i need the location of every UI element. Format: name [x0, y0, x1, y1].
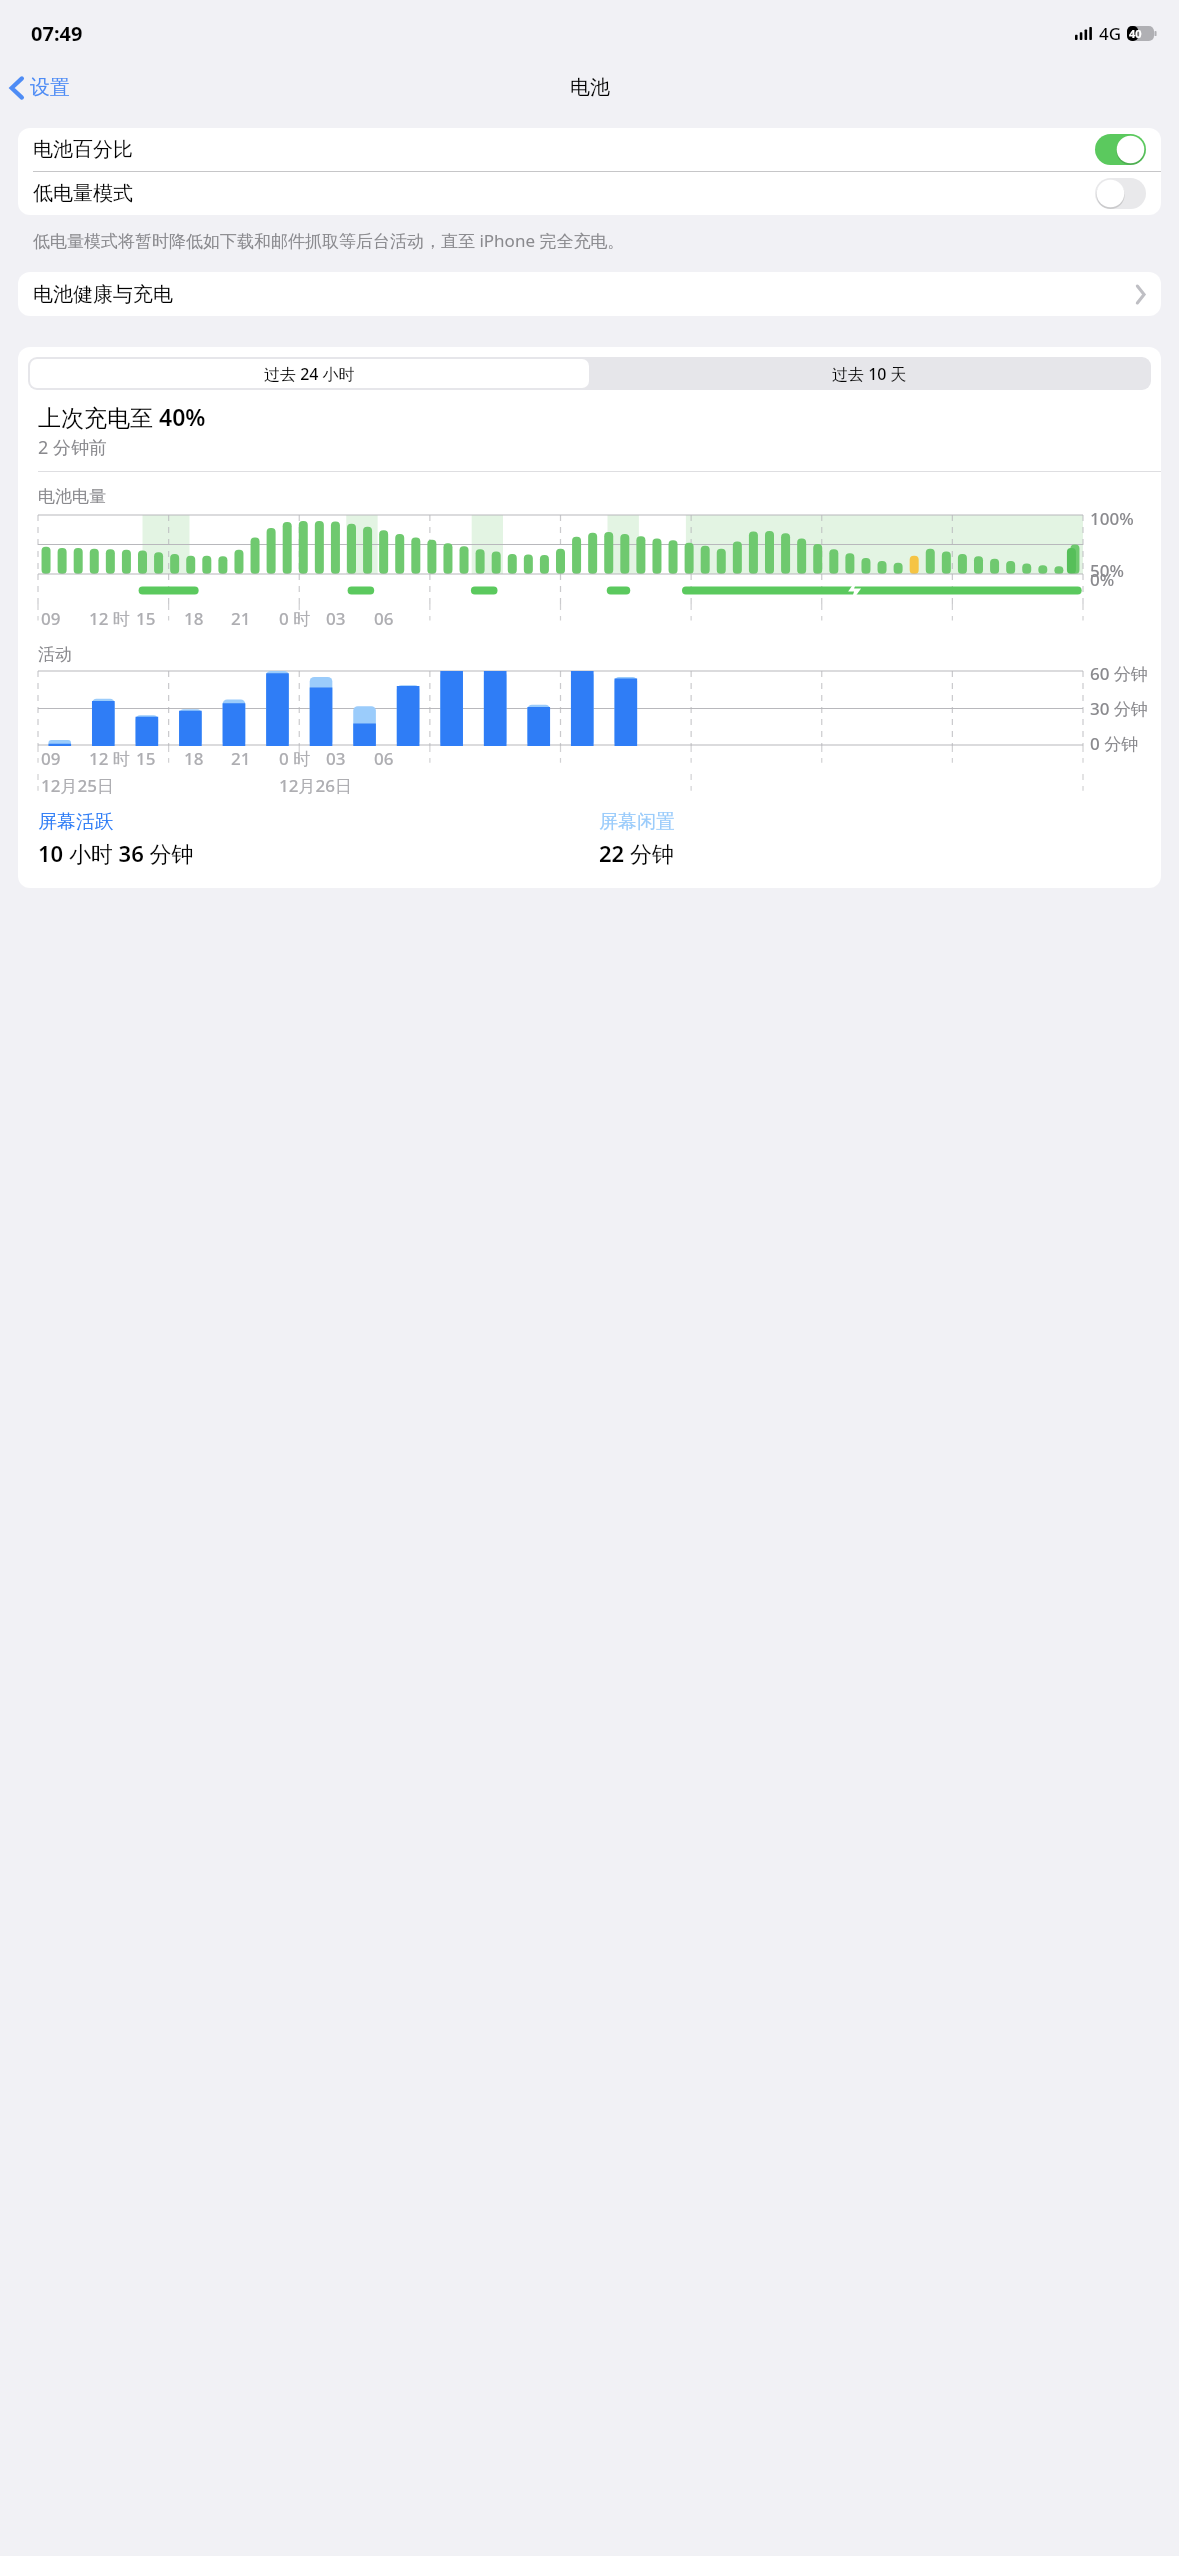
staticText: 设置 [30, 75, 70, 100]
staticText: 18 [184, 607, 204, 630]
staticText: 屏幕活跃 [38, 810, 114, 834]
button[interactable]: 电池健康与充电 [18, 272, 1161, 316]
staticText: 上次充电至 40% [38, 401, 206, 432]
staticText: 03 [326, 607, 346, 630]
staticText: 电池电量 [38, 486, 106, 507]
staticText: 电池健康与充电 [33, 282, 173, 307]
button[interactable]: Toggle on [1095, 134, 1146, 165]
staticText: 50% [1090, 559, 1124, 582]
staticText: 15 [136, 607, 156, 630]
staticText: 过去 10 天 [832, 363, 907, 385]
button[interactable]: 设置 [6, 71, 74, 104]
staticText: 100% [1090, 507, 1134, 530]
staticText: 18 [184, 747, 204, 770]
button[interactable]: 电池百分比 [18, 128, 1161, 171]
staticText: 活动 [38, 644, 72, 665]
staticText: 21 [231, 607, 251, 630]
staticText: 09 [41, 747, 61, 770]
staticText: 低电量模式将暂时降低如下载和邮件抓取等后台活动，直至 iPhone 完全充电。 [33, 229, 625, 252]
staticText: 22 分钟 [599, 838, 674, 868]
staticText: 屏幕闲置 [599, 810, 675, 834]
staticText: 12月26日 [279, 774, 352, 797]
staticText: 12 时 [89, 747, 130, 770]
staticText: 电池百分比 [33, 137, 133, 162]
button[interactable]: 低电量模式 [18, 172, 1161, 215]
staticText: 06 [374, 747, 394, 770]
staticText: 低电量模式 [33, 181, 133, 206]
staticText: 30 分钟 [1090, 697, 1148, 720]
staticText: 过去 24 小时 [264, 363, 355, 385]
button[interactable]: 过去 24 小时 [30, 359, 589, 388]
staticText: 21 [231, 747, 251, 770]
staticText: 0 分钟 [1090, 732, 1139, 755]
staticText: 0 时 [279, 747, 311, 770]
staticText: 03 [326, 747, 346, 770]
staticText: 07:49 [31, 20, 83, 47]
staticText: 10 小时 36 分钟 [38, 838, 194, 868]
button[interactable]: Toggle off [1095, 178, 1146, 209]
staticText: 12 时 [89, 607, 130, 630]
staticText: 06 [374, 607, 394, 630]
staticText: 0% [1090, 568, 1115, 591]
staticText: 0 时 [279, 607, 311, 630]
staticText: 15 [136, 747, 156, 770]
button[interactable]: 过去 10 天 [589, 359, 1149, 388]
staticText: 2 分钟前 [38, 435, 107, 460]
staticText: 60 分钟 [1090, 662, 1148, 685]
staticText: 4G [1099, 22, 1122, 45]
staticText: 电池 [570, 75, 610, 100]
staticText: 12月25日 [41, 774, 114, 797]
staticText: 40 [1129, 26, 1142, 41]
staticText: 09 [41, 607, 61, 630]
